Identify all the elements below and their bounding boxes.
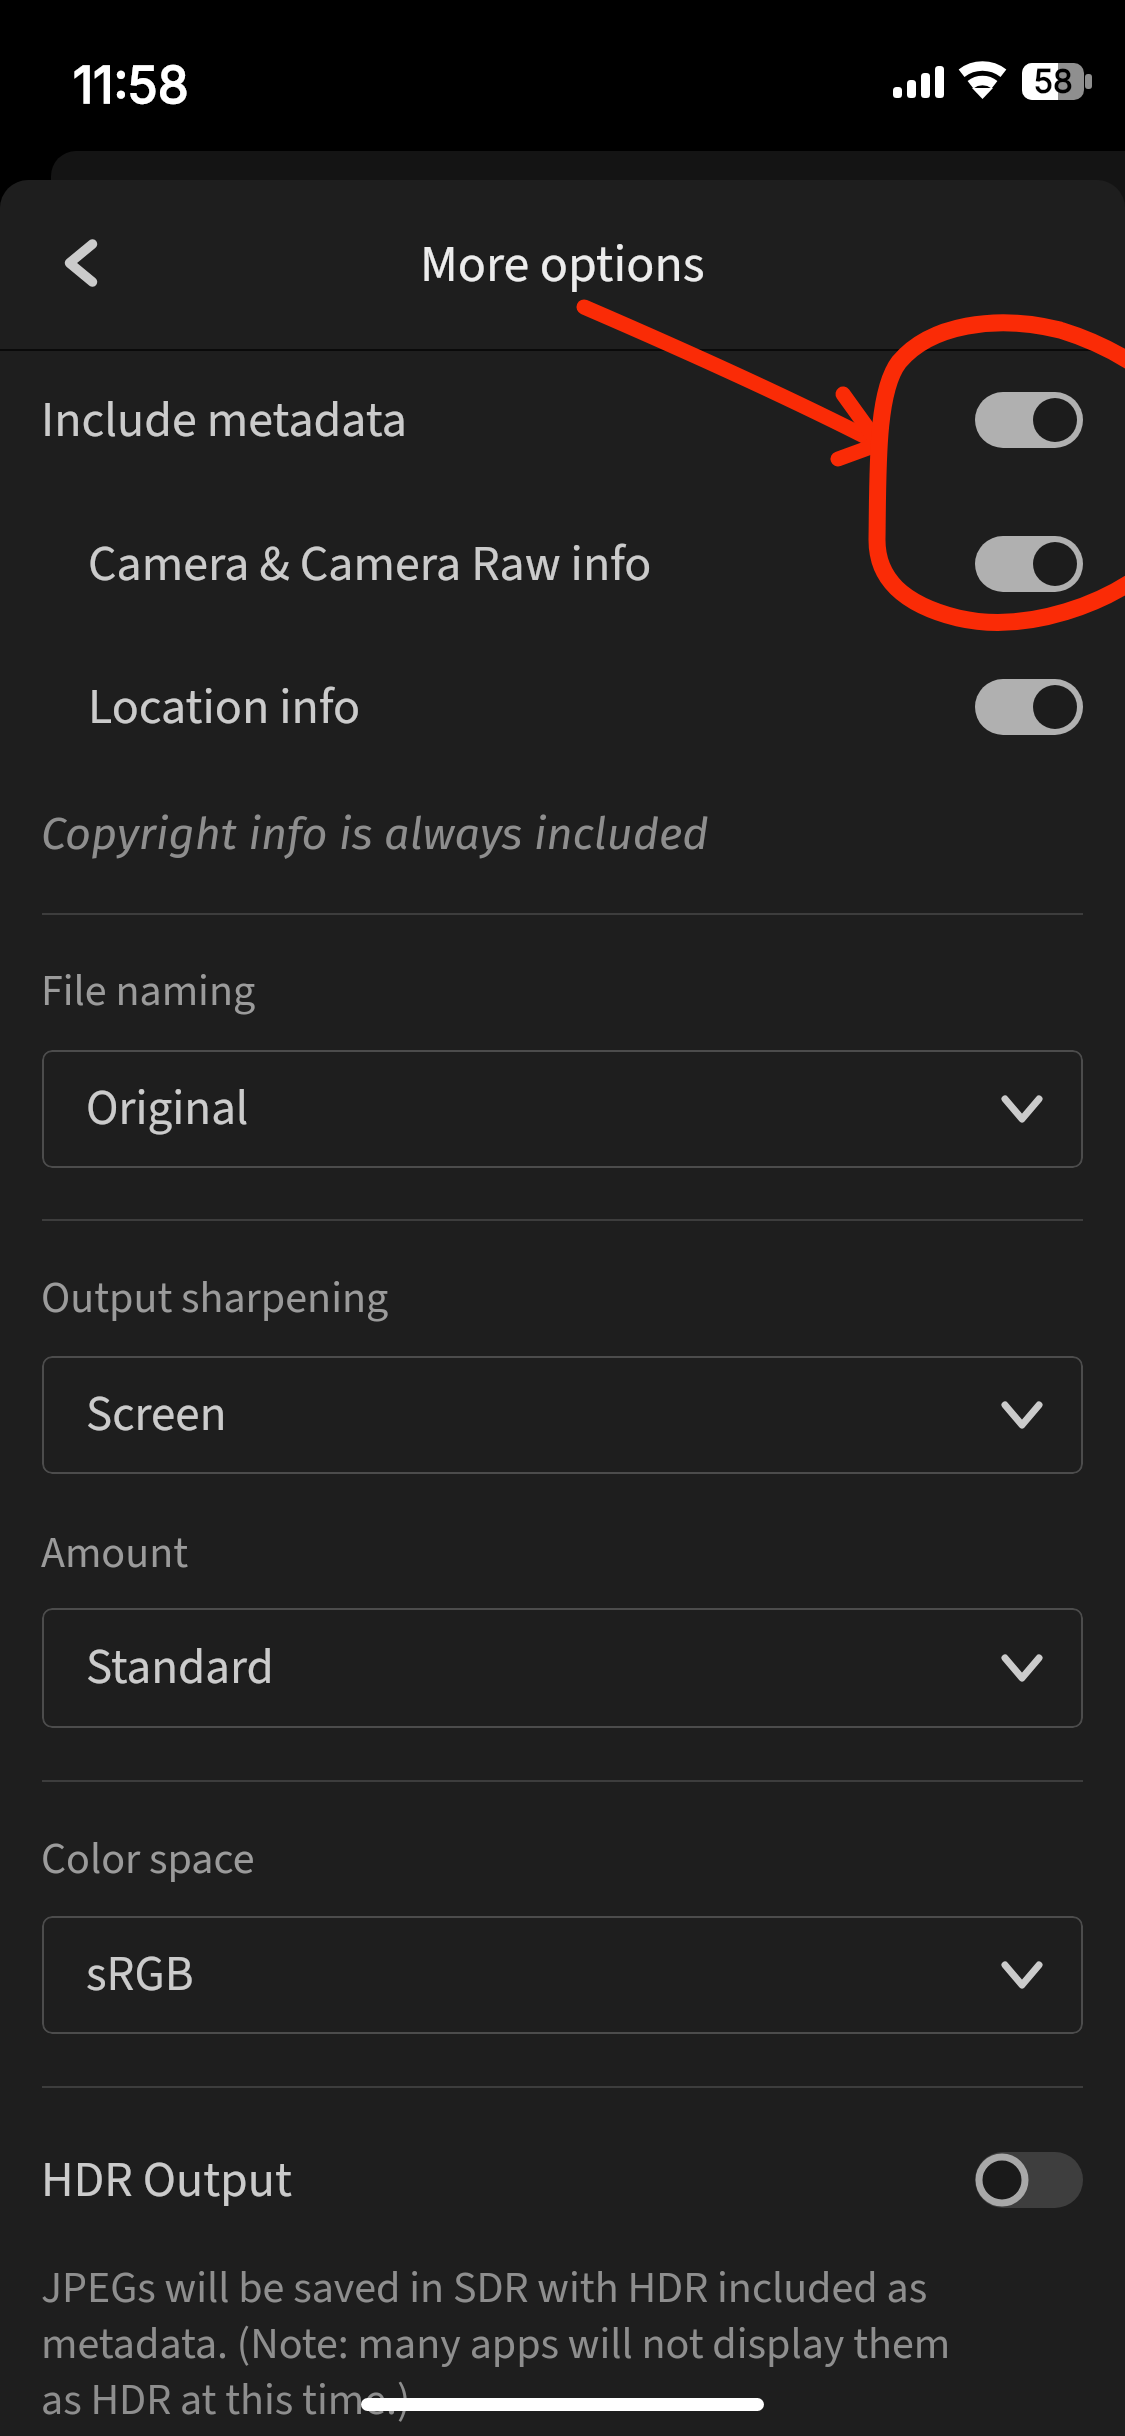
staticText: 11:58: [73, 55, 189, 115]
staticText: Camera & Camera Raw info: [88, 529, 652, 600]
staticText: JPEGs will be saved in SDR with HDR incl…: [41, 2257, 966, 2432]
staticText: Standard: [86, 1633, 274, 1703]
staticText: Screen: [86, 1380, 227, 1450]
staticText: File naming: [41, 960, 256, 1023]
staticText: Original: [86, 1074, 249, 1144]
staticText: Amount: [41, 1522, 189, 1585]
button[interactable]: Switch on: [975, 679, 1083, 735]
button[interactable]: Back: [38, 220, 124, 306]
staticText: Output sharpening: [41, 1267, 389, 1330]
button[interactable]: Screen: [42, 1356, 1083, 1474]
button[interactable]: [0, 636, 1125, 779]
staticText: Include metadata: [41, 385, 407, 456]
staticText: Copyright info is always included: [41, 807, 709, 861]
staticText: HDR Output: [41, 2145, 292, 2216]
staticText: More options: [420, 228, 705, 302]
staticText: Color space: [41, 1828, 255, 1891]
button[interactable]: Switch on: [975, 392, 1083, 448]
staticText: 58: [1034, 62, 1073, 101]
staticText: Location info: [88, 672, 361, 743]
staticText: sRGB: [86, 1940, 194, 2010]
button[interactable]: [0, 350, 1125, 492]
button[interactable]: Original: [42, 1050, 1083, 1168]
button[interactable]: Switch off: [975, 2152, 1083, 2208]
button[interactable]: [0, 492, 1125, 636]
button[interactable]: [0, 2110, 1125, 2250]
button[interactable]: Standard: [42, 1608, 1083, 1728]
button[interactable]: sRGB: [42, 1916, 1083, 2034]
button[interactable]: Switch on: [975, 536, 1083, 592]
